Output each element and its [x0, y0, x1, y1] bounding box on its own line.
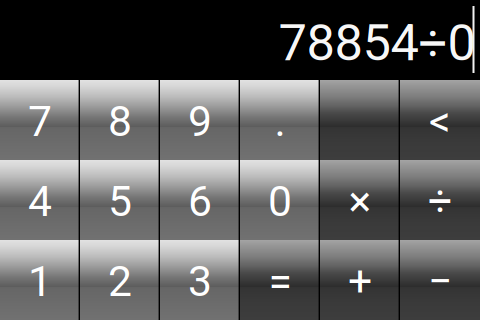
button[interactable]: Decimal point: [240, 80, 320, 160]
button[interactable]: Plus: [320, 240, 400, 320]
button[interactable]: Minus: [400, 240, 480, 320]
staticText: <: [429, 96, 451, 146]
button[interactable]: Multiply: [320, 160, 400, 240]
button[interactable]: 6: [160, 160, 240, 240]
button[interactable]: 3: [160, 240, 240, 320]
staticText: 6: [188, 176, 212, 226]
staticText: 0: [268, 176, 292, 226]
staticText: 78854÷0: [278, 13, 475, 73]
button[interactable]: 2: [80, 240, 160, 320]
staticText: =: [268, 256, 291, 306]
staticText: 8: [108, 96, 132, 146]
staticText: 5: [108, 176, 132, 226]
staticText: 7: [28, 96, 52, 146]
staticText: .: [274, 96, 285, 146]
button[interactable]: 8: [80, 80, 160, 160]
button[interactable]: 7: [0, 80, 80, 160]
staticText: ×: [348, 176, 371, 226]
staticText: 4: [28, 176, 52, 226]
staticText: ÷: [428, 176, 452, 226]
staticText: −: [428, 256, 452, 306]
button[interactable]: 5: [80, 160, 160, 240]
button[interactable]: 4: [0, 160, 80, 240]
button[interactable]: 9: [160, 80, 240, 160]
button[interactable]: 1: [0, 240, 80, 320]
staticText: +: [348, 256, 372, 306]
button[interactable]: Divide: [400, 160, 480, 240]
button[interactable]: 0: [240, 160, 320, 240]
staticText: 3: [188, 256, 212, 306]
staticText: 2: [108, 256, 132, 306]
button[interactable]: Clear: [320, 80, 400, 160]
staticText: 1: [28, 256, 52, 306]
staticText: 9: [188, 96, 212, 146]
button[interactable]: Equals: [240, 240, 320, 320]
button[interactable]: Backspace: [400, 80, 480, 160]
